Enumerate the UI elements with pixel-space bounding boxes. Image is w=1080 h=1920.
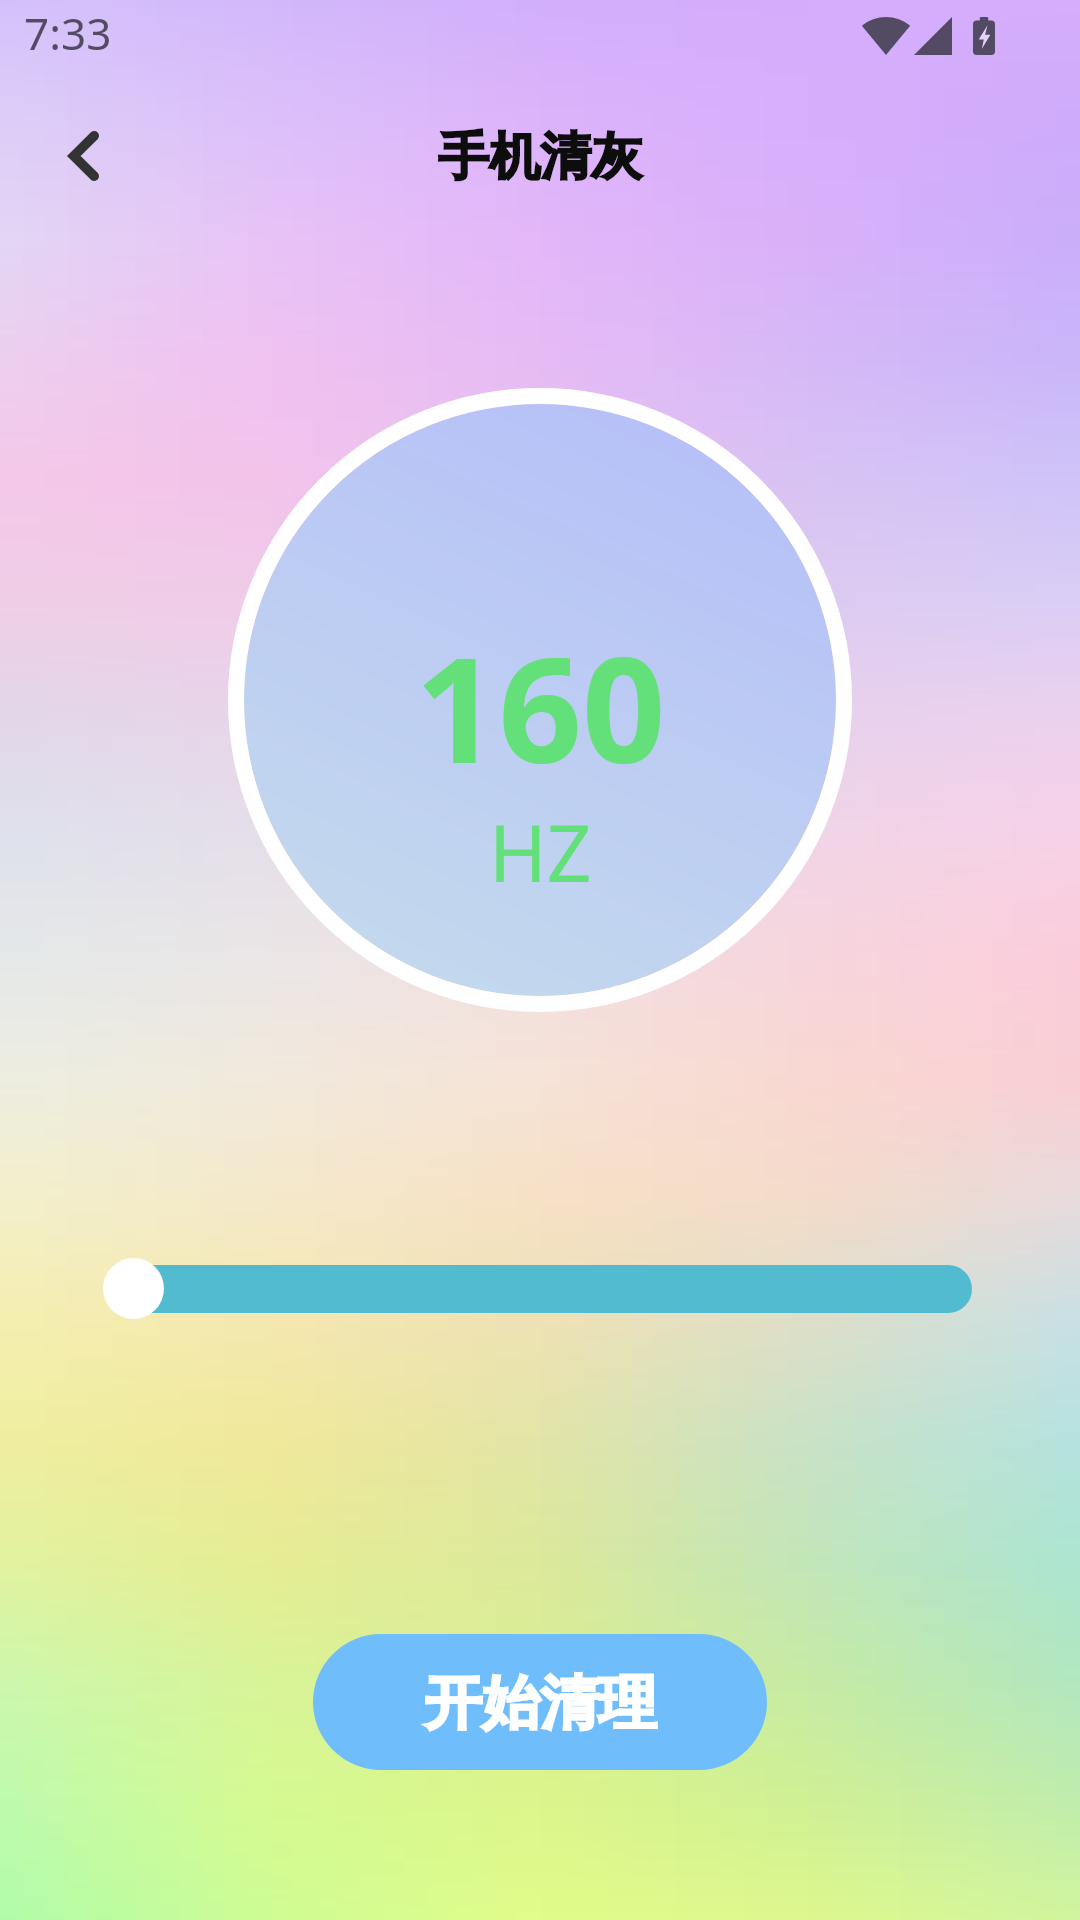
staticText: 160	[415, 607, 666, 806]
staticText: 开始清理	[424, 1667, 656, 1740]
button[interactable]: Refresh rate slider, 160 Hz	[103, 1258, 972, 1319]
staticText: HZ	[489, 799, 592, 905]
button[interactable]: Back	[36, 108, 132, 204]
staticText: 手机清灰	[438, 125, 642, 189]
button[interactable]: 开始清理	[313, 1634, 767, 1770]
staticText: 7:33	[24, 3, 112, 63]
